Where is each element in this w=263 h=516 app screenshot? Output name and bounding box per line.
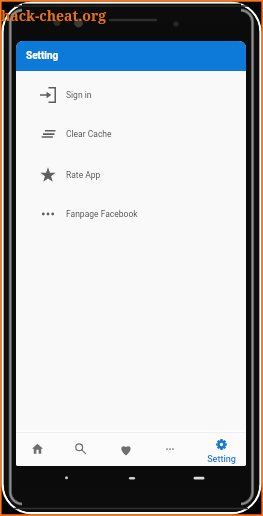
staticText: hack-cheat.org bbox=[1, 6, 107, 25]
staticText: Sign in bbox=[66, 90, 92, 100]
staticText: Setting bbox=[26, 50, 59, 62]
button[interactable]: Rate App bbox=[16, 155, 246, 195]
button[interactable]: Home bbox=[19, 433, 55, 466]
button[interactable]: More bbox=[152, 433, 188, 466]
button[interactable]: Setting bbox=[199, 433, 243, 466]
button[interactable]: Fanpage Facebook bbox=[16, 194, 246, 234]
staticText: Setting bbox=[207, 454, 236, 465]
button[interactable]: Search bbox=[62, 433, 98, 466]
staticText: Clear Cache bbox=[66, 129, 112, 139]
button[interactable]: Favorites bbox=[108, 433, 144, 466]
staticText: Rate App bbox=[66, 170, 101, 180]
button[interactable]: Clear Cache bbox=[16, 114, 246, 154]
button[interactable]: Sign in bbox=[16, 75, 246, 115]
staticText: Fanpage Facebook bbox=[66, 209, 138, 219]
